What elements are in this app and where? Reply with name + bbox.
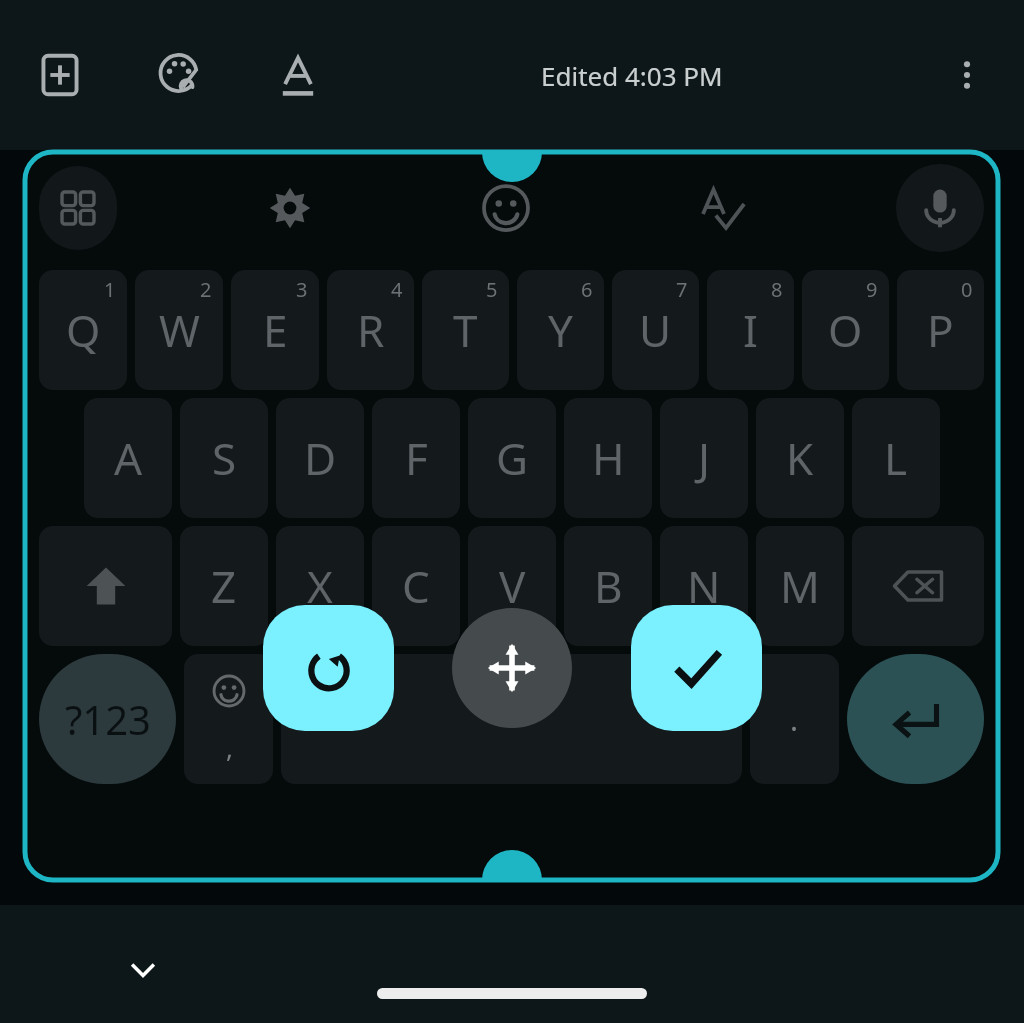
button[interactable]: Add xyxy=(26,41,94,109)
button[interactable]: T xyxy=(422,270,509,390)
staticText: , xyxy=(226,730,233,765)
button[interactable]: Voice input xyxy=(896,164,984,252)
staticText: N xyxy=(687,556,721,616)
button[interactable]: E xyxy=(231,270,319,390)
button[interactable]: C xyxy=(372,526,460,646)
button[interactable]: Clipboard xyxy=(39,166,117,250)
staticText: 7 xyxy=(676,276,688,303)
staticText: A xyxy=(114,428,143,488)
button[interactable]: S xyxy=(180,398,268,518)
staticText: L xyxy=(884,428,908,488)
button[interactable]: Reset xyxy=(263,605,394,731)
button[interactable]: F xyxy=(372,398,460,518)
button[interactable]: Settings xyxy=(248,166,332,250)
button[interactable]: X xyxy=(276,526,364,646)
staticText: . xyxy=(790,699,799,740)
staticText: R xyxy=(357,300,385,360)
staticText: W xyxy=(159,300,200,360)
staticText: J xyxy=(698,428,711,488)
staticText: K xyxy=(786,428,814,488)
staticText: D xyxy=(304,428,337,488)
staticText: V xyxy=(499,556,526,616)
button[interactable]: . xyxy=(750,654,839,784)
button[interactable]: K xyxy=(756,398,844,518)
button[interactable]: P xyxy=(897,270,984,390)
button[interactable]: N xyxy=(660,526,748,646)
staticText: U xyxy=(639,300,672,360)
staticText: P xyxy=(927,300,954,360)
button[interactable]: L xyxy=(852,398,940,518)
button[interactable]: More options xyxy=(932,40,1002,110)
button[interactable]: Move xyxy=(452,608,572,728)
staticText: 3 xyxy=(296,276,308,303)
staticText: G xyxy=(496,428,529,488)
button[interactable]: V xyxy=(468,526,556,646)
button[interactable]: Text formatting xyxy=(264,41,332,109)
staticText: 6 xyxy=(581,276,593,303)
staticText: Q xyxy=(66,300,101,360)
button[interactable]: Y xyxy=(517,270,604,390)
staticText: 1 xyxy=(104,276,116,303)
button[interactable]: G xyxy=(468,398,556,518)
button[interactable]: W xyxy=(135,270,223,390)
staticText: 2 xyxy=(200,276,212,303)
button[interactable]: H xyxy=(564,398,652,518)
button[interactable]: B xyxy=(564,526,652,646)
staticText: O xyxy=(828,300,863,360)
button[interactable]: Q xyxy=(39,270,127,390)
staticText: F xyxy=(405,428,428,488)
staticText: I xyxy=(743,300,758,360)
staticText: T xyxy=(453,300,478,360)
button[interactable]: Emoji xyxy=(464,166,548,250)
button[interactable]: Emoji and comma xyxy=(184,654,273,784)
button[interactable]: Spell check xyxy=(680,166,764,250)
button[interactable]: A xyxy=(84,398,172,518)
button[interactable]: M xyxy=(756,526,844,646)
staticText: M xyxy=(780,556,820,616)
button[interactable]: ?123 xyxy=(39,654,176,784)
staticText: X xyxy=(307,556,333,616)
staticText: 5 xyxy=(486,276,498,303)
button[interactable]: U xyxy=(612,270,699,390)
staticText: Edited 4:03 PM xyxy=(541,58,723,93)
button[interactable]: Space xyxy=(281,654,742,784)
button[interactable]: Confirm xyxy=(631,605,762,731)
button[interactable]: Shift xyxy=(39,526,172,646)
button[interactable]: Enter xyxy=(847,654,984,784)
button[interactable]: Color palette xyxy=(146,41,214,109)
staticText: ?123 xyxy=(65,692,151,746)
staticText: Y xyxy=(548,300,573,360)
button[interactable]: D xyxy=(276,398,364,518)
staticText: E xyxy=(263,300,288,360)
staticText: 9 xyxy=(866,276,878,303)
staticText: H xyxy=(592,428,625,488)
button[interactable]: Backspace xyxy=(852,526,984,646)
button[interactable]: J xyxy=(660,398,748,518)
button[interactable]: Collapse xyxy=(110,936,176,1002)
staticText: C xyxy=(402,556,430,616)
staticText: 4 xyxy=(391,276,403,303)
button[interactable]: Z xyxy=(180,526,268,646)
button[interactable]: R xyxy=(327,270,414,390)
button[interactable]: O xyxy=(802,270,889,390)
staticText: S xyxy=(212,428,237,488)
staticText: B xyxy=(594,556,623,616)
staticText: Z xyxy=(211,556,237,616)
button[interactable]: I xyxy=(707,270,794,390)
staticText: 0 xyxy=(961,276,973,303)
staticText: 8 xyxy=(771,276,783,303)
